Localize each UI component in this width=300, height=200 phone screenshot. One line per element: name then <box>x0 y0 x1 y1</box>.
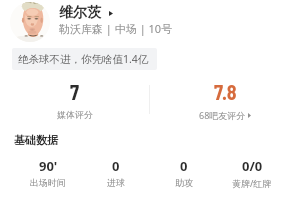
button[interactable]: 0/0 <box>218 157 286 189</box>
button[interactable]: 90' <box>14 157 82 188</box>
staticText: 维尔茨 <box>59 4 101 22</box>
button[interactable]: 7.8 <box>150 80 300 121</box>
staticText: 助攻 <box>175 177 193 188</box>
staticText: 7.8 <box>214 80 237 104</box>
staticText: 基础数据 <box>14 133 58 147</box>
button[interactable]: 0 <box>150 157 218 188</box>
button[interactable]: 维尔茨 <box>59 4 113 22</box>
button[interactable]: 绝杀球不进，你凭啥值1.4亿 <box>12 48 157 70</box>
button[interactable]: 0 <box>82 157 150 188</box>
button[interactable]: Player photo <box>10 2 50 42</box>
staticText: 黄牌/红牌 <box>232 177 272 189</box>
staticText: 7 <box>70 80 80 104</box>
staticText: 媒体评分 <box>57 109 93 120</box>
staticText: 68吧友评分 <box>199 109 246 121</box>
staticText: 进球 <box>107 177 125 188</box>
staticText: 0 <box>180 157 188 175</box>
staticText: 绝杀球不进，你凭啥值1.4亿 <box>18 52 149 66</box>
button[interactable]: 7 <box>0 80 150 120</box>
staticText: 出场时间 <box>30 177 66 188</box>
staticText: 90' <box>39 157 58 175</box>
staticText: 勒沃库森 | 中场 | 10号 <box>59 21 173 36</box>
staticText: 0/0 <box>242 157 263 175</box>
staticText: 0 <box>112 157 120 175</box>
